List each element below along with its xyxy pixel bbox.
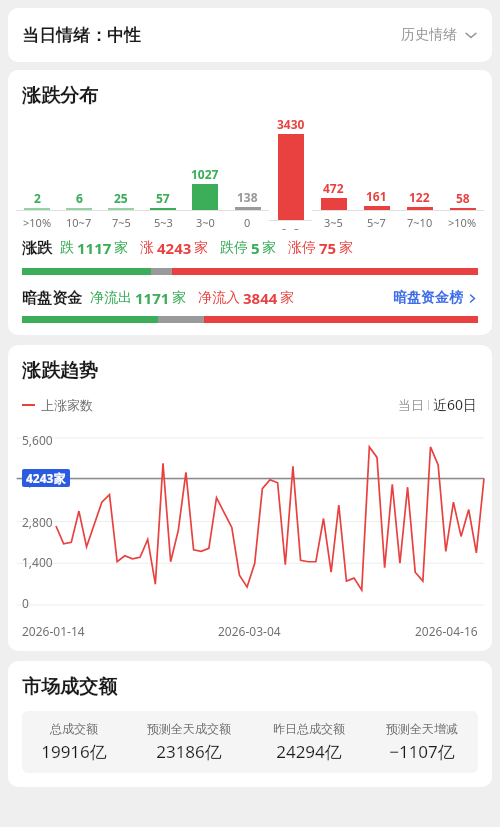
staticText: 净流入 [198,289,240,307]
staticText: 预测全天成交额 [147,721,231,736]
staticText: 涨停 [288,239,316,257]
staticText: 市场成交额 [22,675,117,699]
staticText: 3~5 [324,215,343,230]
staticText: 家 [114,239,128,257]
staticText: 跌 [60,239,74,257]
staticText: 5,600 [22,432,53,448]
button[interactable]: 近60日 [433,395,478,414]
staticText: 家 [339,239,353,257]
staticText: 2,800 [22,514,53,530]
staticText: 家 [172,289,186,307]
staticText: 122 [409,189,430,205]
staticText: 0 [22,595,29,611]
staticText: 家 [280,289,294,307]
staticText: 472 [323,180,344,196]
staticText: 3430 [277,116,305,132]
staticText: 25 [114,190,128,206]
staticText: 暗盘资金 [22,289,82,308]
staticText: 2026-01-14 [22,623,85,639]
staticText: 当日情绪：中性 [22,25,141,46]
staticText: 6 [76,190,83,206]
button[interactable]: 当日情绪：中性 [8,8,492,62]
staticText: 总成交额 [50,721,98,736]
staticText: 2 [34,190,41,206]
staticText: 3~0 [196,215,215,230]
staticText: 5~7 [367,215,386,230]
staticText: 近60日 [433,395,478,414]
staticText: 上涨家数 [41,397,93,413]
staticText: >10% [448,215,477,230]
other: 展开历史情绪 [464,28,478,42]
staticText: 4243家 [26,470,66,486]
staticText: 138 [237,189,258,205]
button[interactable]: 当日 [398,397,424,413]
staticText: 5 [251,238,260,258]
staticText: 家 [262,239,276,257]
staticText: 19916亿 [41,740,107,763]
staticText: 10~7 [66,215,92,230]
staticText: >10% [23,215,52,230]
staticText: 涨跌 [22,239,52,258]
staticText: 暗盘资金榜 [393,289,463,307]
staticText: 57 [156,190,170,206]
staticText: 跌停 [220,239,248,257]
staticText: 24294亿 [276,740,342,763]
staticText: 家 [194,239,208,257]
staticText: 23186亿 [156,740,222,763]
staticText: 净流出 [90,289,132,307]
staticText: 2026-04-16 [415,623,478,639]
staticText: −1107亿 [389,740,455,763]
staticText: 4243 [157,238,192,258]
staticText: 0~3 [281,225,300,230]
staticText: 昨日总成交额 [273,721,345,736]
staticText: 1171 [135,288,170,308]
staticText: 涨跌趋势 [22,359,98,383]
button[interactable]: 涨跌 [8,236,492,260]
staticText: 7~10 [407,215,433,230]
staticText: 预测全天增减 [386,721,458,736]
staticText: 5~3 [154,215,173,230]
staticText: 4,200 [22,473,53,489]
staticText: 1117 [77,238,112,258]
staticText: 1027 [191,166,219,182]
staticText: 1,400 [22,554,53,570]
staticText: 58 [456,190,470,206]
staticText: 涨 [140,239,154,257]
staticText: 涨跌分布 [22,84,98,108]
button[interactable]: 暗盘资金 [8,288,492,308]
staticText: 0 [244,215,251,230]
staticText: 当日 [398,397,424,413]
staticText: 2026-03-04 [218,623,281,639]
staticText: 75 [319,238,337,258]
staticText: 7~5 [112,215,131,230]
staticText: 历史情绪 [401,26,457,44]
staticText: 161 [366,188,387,204]
staticText: 3844 [243,288,278,308]
